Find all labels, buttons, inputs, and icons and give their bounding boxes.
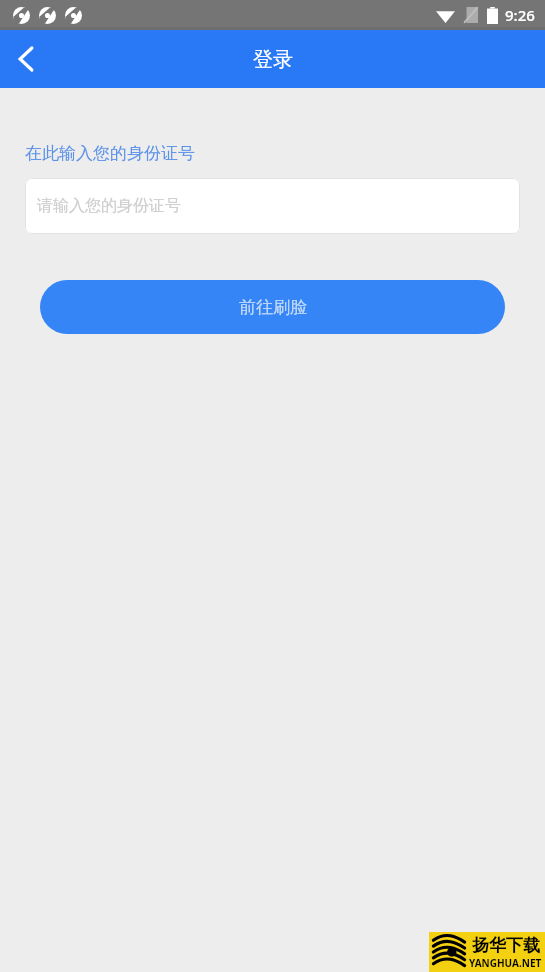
staticText: 扬华下载 <box>472 935 540 956</box>
staticText: 前往刷脸 <box>239 297 307 318</box>
staticText: 请输入您的身份证号 <box>37 196 181 216</box>
button[interactable]: 前往刷脸 <box>40 280 505 334</box>
staticText: 登录 <box>253 47 293 72</box>
staticText: 9:26 <box>505 5 535 25</box>
staticText: YANGHUA.NET <box>469 956 542 970</box>
staticText: 在此输入您的身份证号 <box>25 143 195 164</box>
button[interactable]: 请输入您的身份证号 <box>25 178 520 234</box>
button[interactable]: Back <box>0 33 52 85</box>
